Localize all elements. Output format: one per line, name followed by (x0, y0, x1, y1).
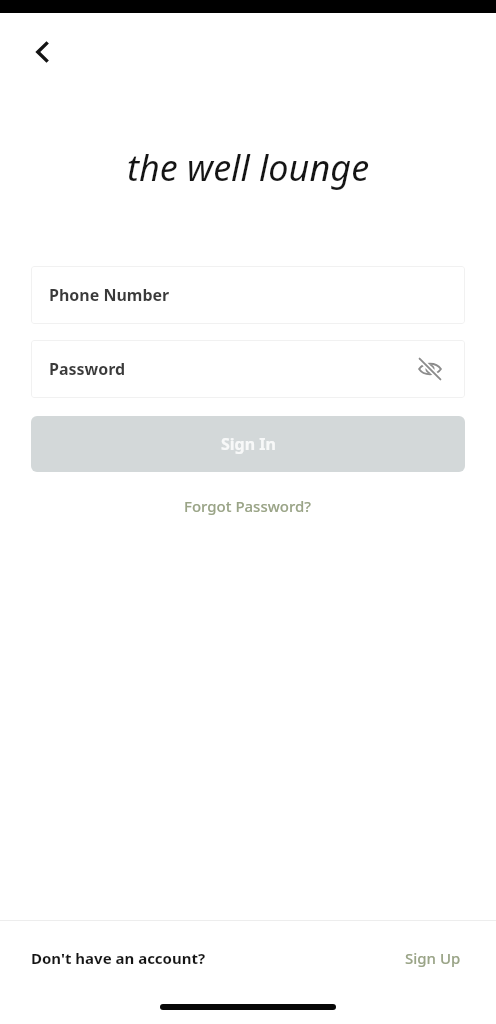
button[interactable]: Phone Number (31, 266, 465, 324)
staticText: Phone Number (49, 284, 170, 306)
staticText: Password (49, 358, 126, 380)
staticText: Sign In (221, 433, 276, 455)
staticText: Forgot Password? (184, 496, 312, 516)
button[interactable]: Show password (414, 353, 446, 385)
button[interactable]: Sign Up (401, 942, 465, 974)
button[interactable]: Forgot Password? (170, 491, 326, 521)
staticText: Sign Up (405, 948, 461, 968)
button[interactable]: Back (20, 29, 66, 75)
staticText: Don't have an account? (31, 948, 206, 968)
button[interactable]: Sign In (31, 416, 465, 472)
button[interactable]: Password (31, 340, 465, 398)
staticText: the well lounge (127, 143, 370, 192)
